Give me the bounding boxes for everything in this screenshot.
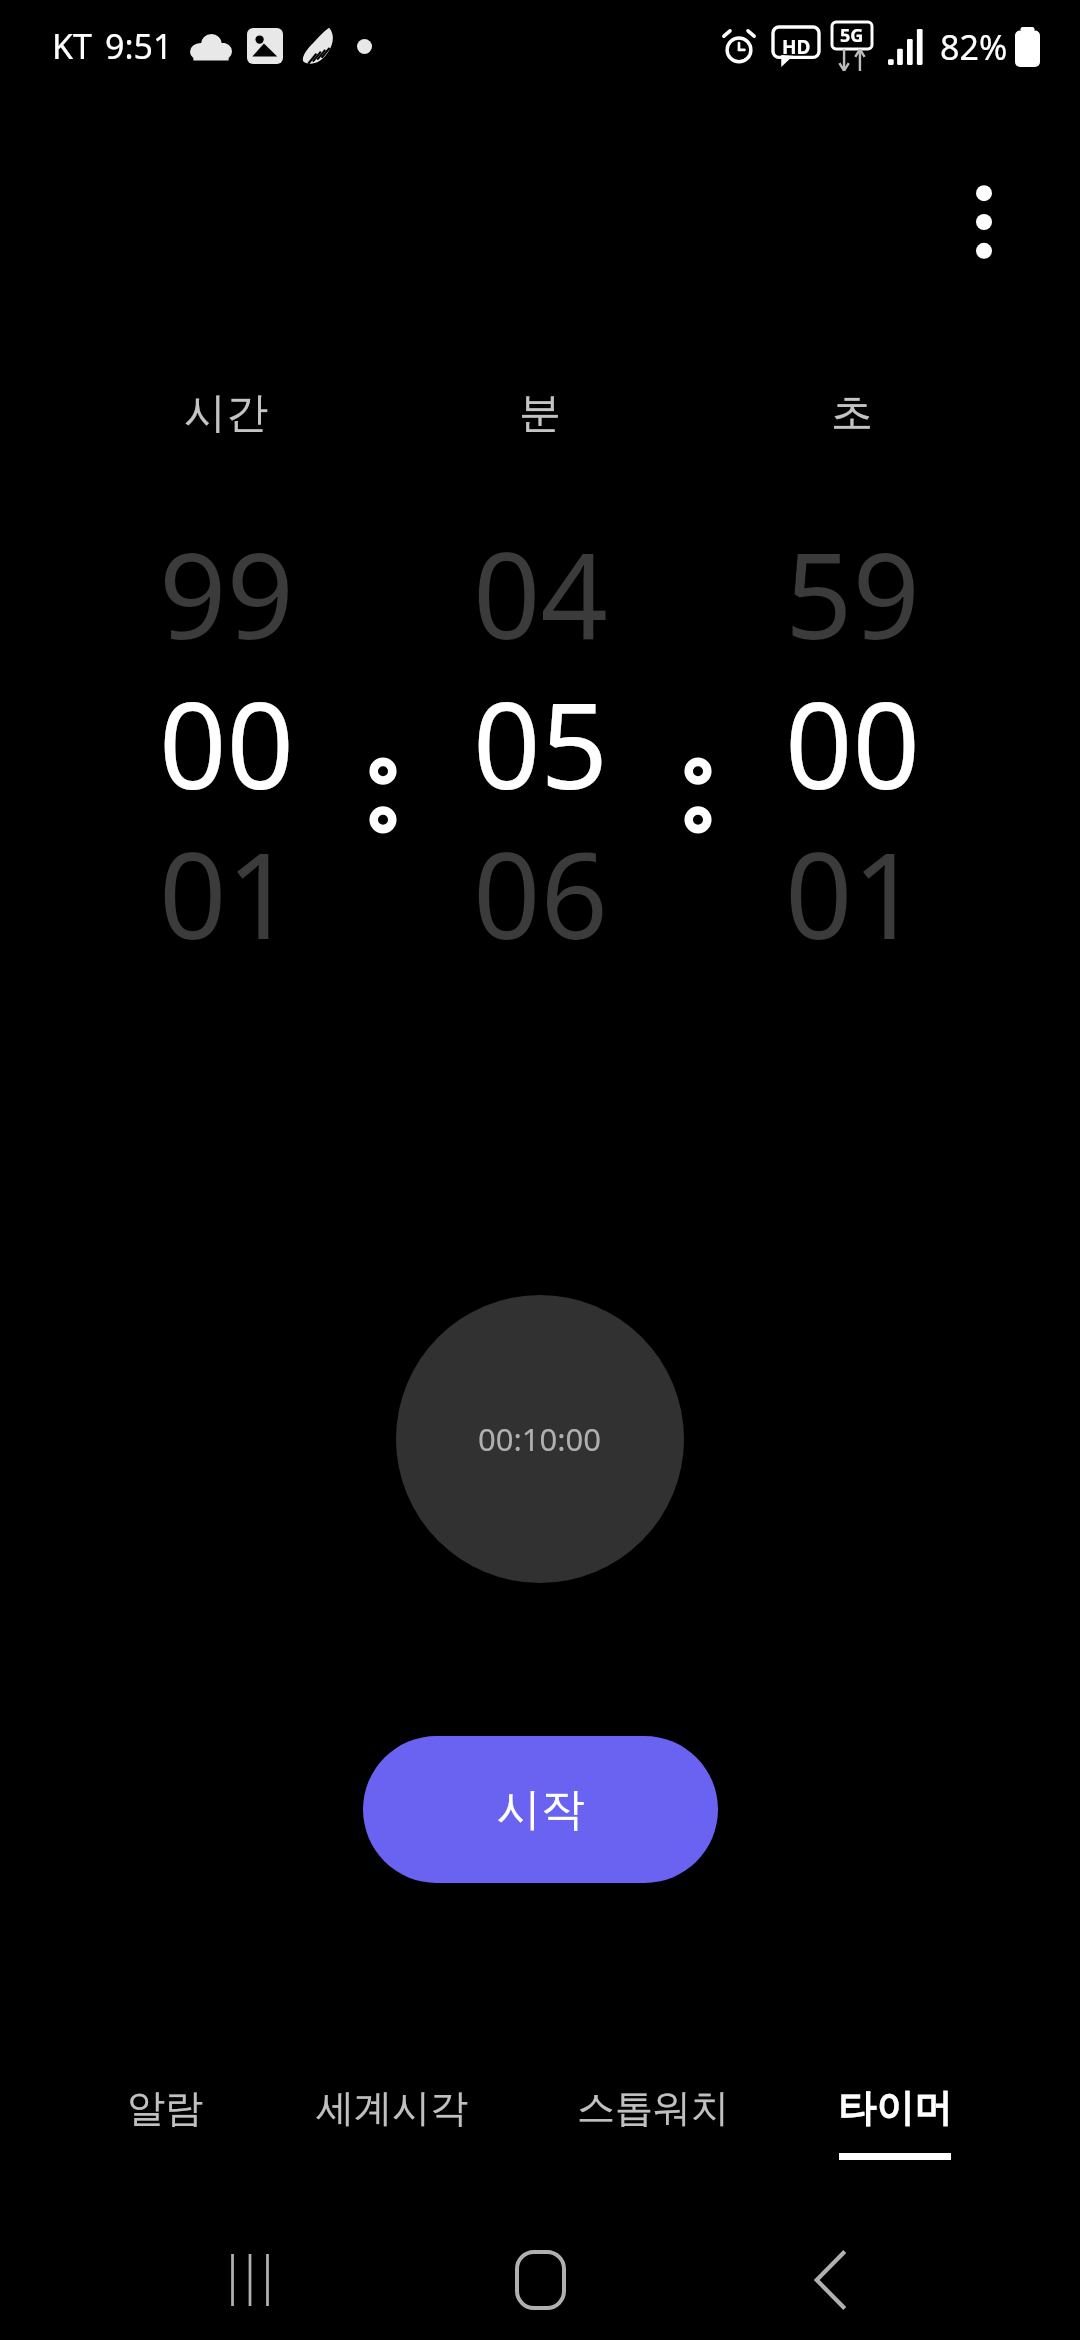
staticText: 시작 [497, 1782, 585, 1837]
staticText: 00:10:00 [478, 1418, 602, 1460]
staticText: 06 [473, 813, 608, 974]
staticText: 시간 [184, 387, 268, 440]
button[interactable]: Home [485, 2225, 595, 2335]
button[interactable]: 00:10:00 [396, 1295, 684, 1583]
staticText: 5G [840, 23, 864, 48]
staticText: 59 [785, 513, 920, 674]
button[interactable]: 알람 [40, 2040, 290, 2190]
staticText: 00 [159, 663, 294, 824]
staticText: KT [52, 23, 92, 69]
staticText: 분 [519, 387, 561, 440]
staticText: 01 [159, 813, 294, 974]
button[interactable]: Recent apps [195, 2225, 305, 2335]
button[interactable]: 00 [66, 648, 386, 838]
staticText: 타이머 [838, 2084, 952, 2132]
staticText: 00 [785, 663, 920, 824]
button[interactable]: 99 [66, 498, 386, 688]
button[interactable]: 06 [380, 798, 700, 988]
staticText: 초 [831, 387, 873, 440]
button[interactable]: 세계시각 [267, 2040, 517, 2190]
staticText: 9:51 [105, 23, 173, 69]
button[interactable]: More options [934, 172, 1034, 272]
staticText: 스톱워치 [577, 2084, 729, 2132]
button[interactable]: 스톱워치 [528, 2040, 778, 2190]
staticText: 04 [473, 513, 608, 674]
button[interactable]: Back [775, 2225, 885, 2335]
staticText: 01 [785, 813, 920, 974]
button[interactable]: 01 [66, 798, 386, 988]
staticText: 82% [940, 24, 1008, 70]
staticText: HD [782, 34, 811, 60]
button[interactable]: 시작 [363, 1736, 718, 1883]
button[interactable]: 01 [692, 798, 1012, 988]
button[interactable]: 타이머 [770, 2040, 1020, 2190]
staticText: 알람 [127, 2084, 203, 2132]
staticText: 99 [159, 513, 294, 674]
staticText: 05 [473, 663, 608, 824]
button[interactable]: 05 [380, 648, 700, 838]
staticText: 세계시각 [316, 2084, 468, 2132]
button[interactable]: 04 [380, 498, 700, 688]
button[interactable]: 59 [692, 498, 1012, 688]
button[interactable]: 00 [692, 648, 1012, 838]
